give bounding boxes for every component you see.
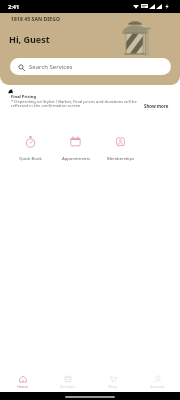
staticText: Hi, Guest [9, 33, 50, 45]
staticText: Account [150, 384, 165, 389]
button[interactable]: Show more [144, 103, 169, 109]
button[interactable]: Account [135, 371, 180, 392]
button[interactable]: Services [45, 371, 90, 392]
staticText: * Depending on Stylist / Barber, Final p… [11, 99, 137, 109]
button[interactable]: Quick Book [8, 134, 53, 163]
button[interactable]: Home [0, 371, 45, 392]
button[interactable]: Memberships [98, 134, 143, 163]
staticText: Shop [108, 384, 118, 389]
staticText: Search Services [29, 63, 73, 71]
staticText: Home [17, 384, 28, 389]
staticText: 1818 45 SAN DIEGO [11, 16, 61, 23]
staticText: Memberships [107, 156, 134, 162]
button[interactable]: Search Services [10, 58, 171, 75]
staticText: Final Pricing [11, 94, 37, 100]
staticText: 2:41 [8, 3, 20, 11]
staticText: Quick Book [19, 156, 42, 162]
staticText: Appointments [62, 156, 90, 162]
button[interactable]: Shop [90, 371, 135, 392]
button[interactable]: Appointments [53, 134, 98, 163]
staticText: Show more [144, 103, 169, 109]
staticText: Services [60, 384, 75, 389]
